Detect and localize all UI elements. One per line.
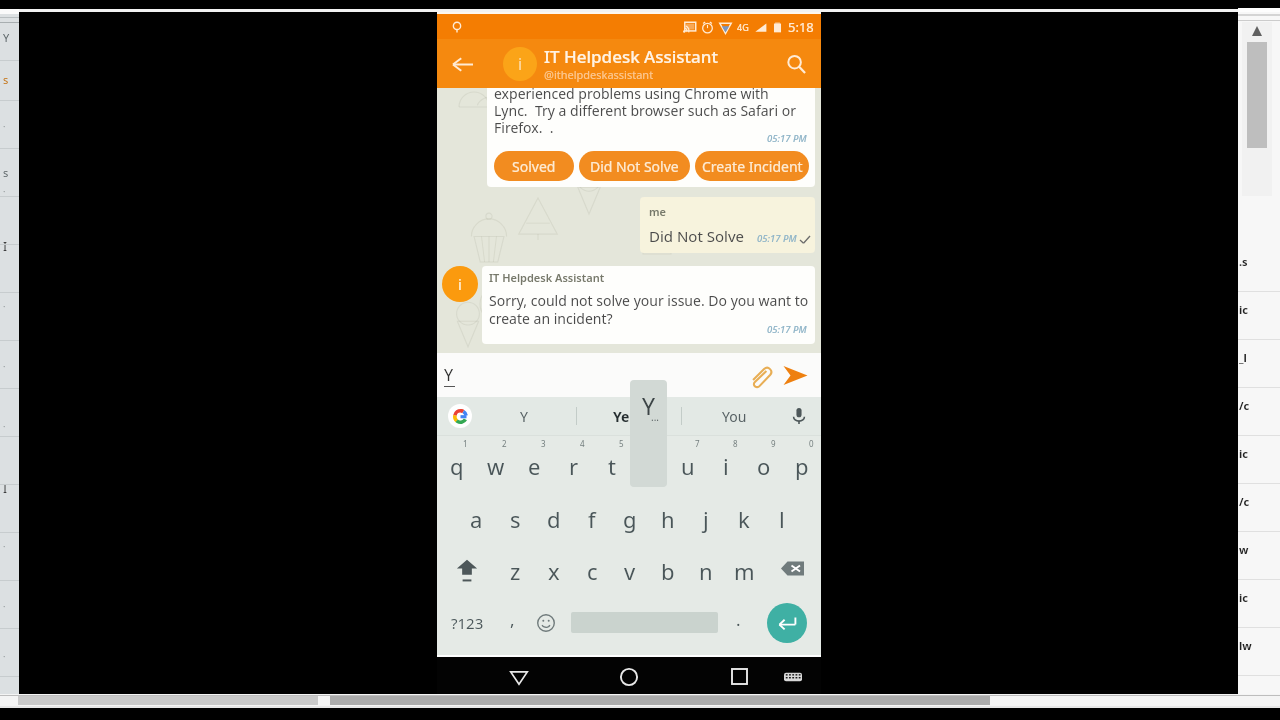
button[interactable]: f — [573, 489, 611, 542]
button[interactable]: z — [496, 542, 535, 595]
staticText: b — [661, 556, 675, 586]
staticText: h — [661, 504, 675, 534]
button[interactable]: v — [611, 542, 649, 595]
button[interactable]: Space — [565, 595, 723, 650]
button[interactable]: Did Not Solve — [579, 151, 690, 181]
staticText: u — [681, 451, 695, 481]
staticText: w — [1239, 542, 1249, 557]
staticText: Did Not Solve — [590, 157, 679, 176]
button[interactable]: 0 — [783, 436, 821, 489]
staticText: · — [3, 600, 6, 612]
button[interactable]: Shift — [437, 542, 496, 595]
staticText: Did Not Solve — [649, 226, 744, 246]
staticText: · — [3, 420, 6, 432]
staticText: q — [450, 451, 464, 481]
staticText: lw — [1239, 638, 1252, 653]
staticText: ... — [651, 410, 660, 424]
staticText: Solved — [512, 157, 556, 176]
button[interactable]: k — [725, 489, 763, 542]
button[interactable]: Google search — [448, 404, 472, 428]
button[interactable]: 6 — [631, 436, 669, 489]
button[interactable]: 5 — [593, 436, 631, 489]
staticText: ic — [1239, 446, 1248, 461]
staticText: /c — [1239, 494, 1250, 509]
staticText: Y — [520, 407, 528, 426]
button[interactable]: Attach file — [741, 357, 777, 393]
button[interactable]: g — [611, 489, 649, 542]
button[interactable]: Backspace — [763, 542, 821, 595]
button[interactable]: Emoji — [527, 595, 565, 650]
staticText: 2 — [502, 438, 507, 449]
button[interactable]: 3 — [515, 436, 554, 489]
button[interactable]: d — [535, 489, 573, 542]
button[interactable]: Solved — [494, 151, 574, 181]
button[interactable]: Back — [499, 657, 539, 696]
staticText: ic — [1239, 590, 1248, 605]
staticText: z — [510, 556, 521, 586]
button[interactable]: Hide keyboard — [773, 657, 813, 696]
button[interactable]: , — [497, 595, 527, 650]
staticText: 1 — [463, 438, 468, 449]
button[interactable]: ?123 — [437, 595, 497, 650]
button[interactable]: 1 — [437, 436, 476, 489]
button[interactable]: You — [682, 397, 786, 435]
staticText: 05:17 PM — [767, 132, 807, 145]
button[interactable]: Search — [777, 45, 815, 83]
button[interactable]: Home — [609, 657, 649, 696]
button[interactable]: IT Helpdesk Assistant — [482, 266, 815, 344]
button[interactable]: l — [763, 489, 801, 542]
staticText: 4 — [580, 438, 585, 449]
button[interactable]: 8 — [707, 436, 745, 489]
staticText: me — [649, 204, 666, 219]
button[interactable]: Create Incident — [695, 151, 809, 181]
button[interactable]: s — [496, 489, 535, 542]
button[interactable]: b — [649, 542, 687, 595]
staticText: Create Incident — [702, 157, 803, 176]
staticText: c — [587, 556, 598, 586]
staticText: · — [3, 650, 6, 662]
staticText: ic — [1239, 302, 1248, 317]
staticText: f — [588, 504, 596, 534]
button[interactable]: n — [687, 542, 725, 595]
button[interactable]: x — [535, 542, 573, 595]
button[interactable]: Voice input — [786, 403, 812, 429]
button[interactable]: 2 — [476, 436, 515, 489]
staticText: 3 — [541, 438, 546, 449]
staticText: m — [734, 556, 755, 586]
staticText: s — [510, 504, 521, 534]
button[interactable]: Send — [777, 357, 813, 393]
staticText: · — [3, 360, 6, 372]
button[interactable]: Enter — [767, 603, 807, 643]
staticText: You — [722, 407, 747, 426]
button[interactable]: Y — [472, 397, 576, 435]
button[interactable]: 4 — [554, 436, 593, 489]
button[interactable]: Recent apps — [719, 657, 759, 696]
button[interactable]: me — [640, 197, 815, 253]
staticText: 9 — [771, 438, 776, 449]
staticText: s — [3, 72, 9, 87]
button[interactable]: Avatar — [442, 266, 478, 302]
staticText: o — [757, 451, 771, 481]
staticText: s — [3, 165, 9, 180]
staticText: r — [569, 451, 579, 481]
button[interactable]: 9 — [745, 436, 783, 489]
button[interactable]: a — [457, 489, 496, 542]
button[interactable]: c — [573, 542, 611, 595]
button[interactable]: m — [725, 542, 763, 595]
staticText: I — [3, 480, 8, 496]
staticText: i — [458, 274, 462, 294]
button[interactable]: Back — [443, 45, 481, 83]
staticText: t — [608, 451, 616, 481]
staticText: i — [518, 53, 523, 75]
button[interactable]: 7 — [669, 436, 707, 489]
staticText: 5 — [619, 438, 624, 449]
staticText: i — [723, 451, 729, 481]
staticText: ?123 — [451, 613, 484, 633]
staticText: 05:17 PM — [757, 232, 797, 245]
button[interactable]: Profile — [503, 47, 537, 81]
button[interactable]: j — [687, 489, 725, 542]
button[interactable]: . — [723, 595, 753, 650]
button[interactable]: h — [649, 489, 687, 542]
button[interactable]: Ye — [577, 397, 681, 435]
